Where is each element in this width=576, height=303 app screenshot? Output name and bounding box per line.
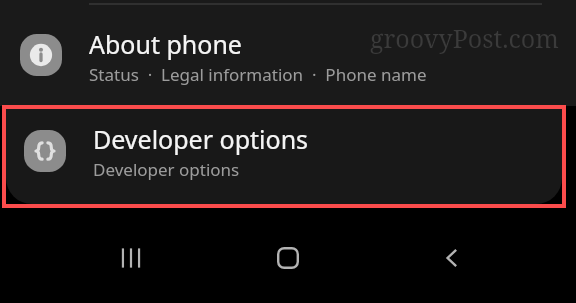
staticText: groovyPost.com [370,21,559,55]
button[interactable]: Home [262,232,314,284]
button[interactable]: Recent apps [105,232,157,284]
staticText: Status · Legal information · Phone name [89,63,427,86]
staticText: About phone [89,27,242,61]
button[interactable]: Developer options [6,109,562,204]
staticText: Developer options [93,122,309,156]
staticText: Developer options [93,158,240,181]
button[interactable]: About phone [0,0,576,106]
button[interactable]: Back [426,232,478,284]
